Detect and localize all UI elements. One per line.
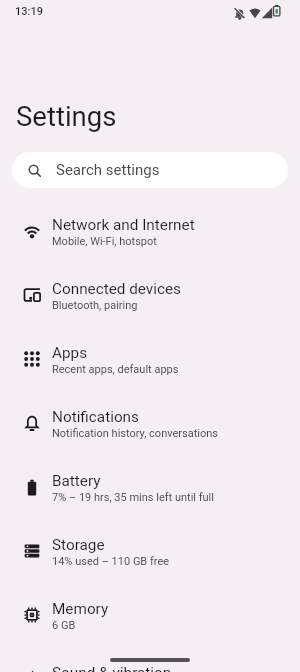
staticText: Memory (52, 600, 109, 618)
button[interactable]: Search settings (12, 152, 288, 188)
staticText: Mobile, Wi-Fi, hotspot (52, 235, 157, 248)
staticText: 13:19 (15, 5, 43, 18)
staticText: Bluetooth, pairing (52, 299, 138, 312)
staticText: Apps (52, 344, 88, 362)
button[interactable]: Storage (0, 519, 300, 583)
staticText: Connected devices (52, 280, 182, 298)
staticText: Settings (16, 100, 117, 132)
staticText: Notifications (52, 408, 139, 426)
button[interactable]: Sound & vibration (0, 647, 300, 672)
button[interactable]: Notifications (0, 391, 300, 455)
staticText: 6 GB (52, 619, 76, 632)
staticText: Battery (52, 472, 101, 490)
staticText: Network and Internet (52, 216, 195, 234)
button[interactable]: Battery (0, 455, 300, 519)
staticText: Storage (52, 536, 105, 554)
staticText: Recent apps, default apps (52, 363, 179, 376)
button[interactable]: Memory (0, 583, 300, 647)
staticText: Sound & vibration (52, 664, 172, 672)
button[interactable]: Apps (0, 327, 300, 391)
staticText: Search settings (56, 161, 160, 179)
staticText: Notification history, conversations (52, 427, 218, 440)
button[interactable]: Network and Internet (0, 199, 300, 263)
button[interactable]: Connected devices (0, 263, 300, 327)
staticText: 14% used – 110 GB free (52, 555, 170, 568)
staticText: 7% – 19 hrs, 35 mins left until full (52, 491, 214, 504)
